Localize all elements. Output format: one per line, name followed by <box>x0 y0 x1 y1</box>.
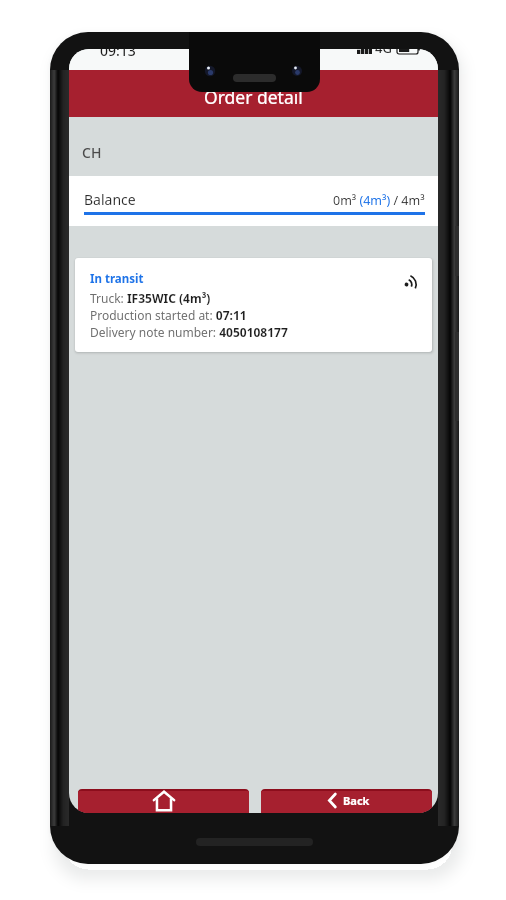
staticText: 0m³ (4m³) / 4m³ <box>333 192 425 209</box>
staticText: 09:13 <box>100 49 136 60</box>
staticText: Delivery note number: 4050108177 <box>90 324 288 340</box>
button[interactable]: Home <box>78 791 249 813</box>
staticText: In transit <box>90 271 144 287</box>
button[interactable]: In transit <box>75 258 432 352</box>
other: Live tracking <box>403 272 419 288</box>
staticText: CH <box>82 143 102 162</box>
button[interactable]: Back <box>261 791 432 813</box>
staticText: Order detail <box>204 85 303 109</box>
staticText: Truck: IF35WIC (4m³) <box>90 290 211 306</box>
staticText: Back <box>343 793 370 808</box>
staticText: Production started at: 07:11 <box>90 307 247 323</box>
staticText: Balance <box>84 190 136 209</box>
staticText: 4G <box>375 49 392 57</box>
